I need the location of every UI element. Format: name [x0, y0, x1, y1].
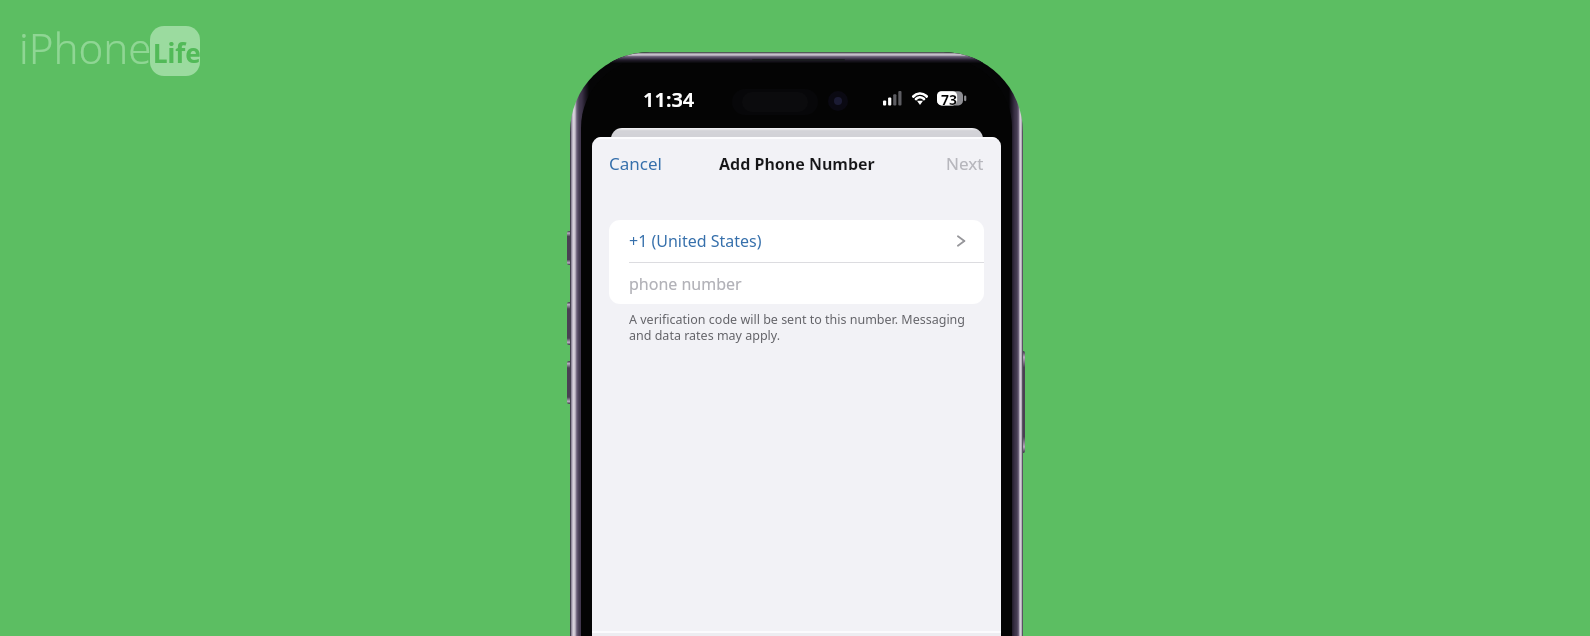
staticText: phone number: [629, 273, 742, 295]
button[interactable]: phone number: [609, 263, 984, 304]
staticText: Cancel: [609, 152, 662, 175]
staticText: Add Phone Number: [719, 153, 875, 175]
staticText: iPhone: [19, 19, 152, 76]
staticText: 73: [941, 90, 958, 108]
staticText: A verification code will be sent to this…: [629, 311, 970, 343]
staticText: Life: [153, 35, 201, 70]
staticText: 11:34: [643, 86, 695, 112]
staticText: +1 (United States): [629, 230, 762, 252]
other: Choose country: [954, 234, 968, 248]
button[interactable]: +1 (United States): [609, 220, 984, 262]
button[interactable]: Next: [938, 146, 992, 181]
staticText: Next: [946, 152, 984, 175]
button[interactable]: Cancel: [601, 146, 670, 181]
